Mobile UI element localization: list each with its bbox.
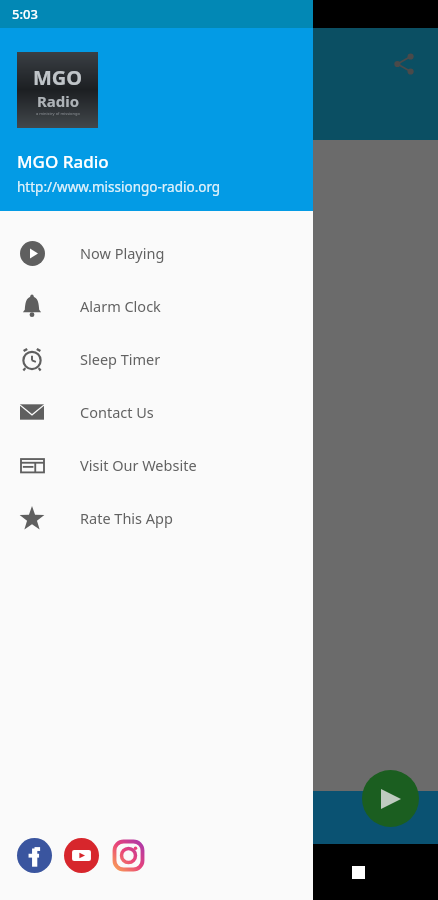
staticText: Sleep Timer xyxy=(80,349,161,369)
button[interactable]: Contact Us xyxy=(0,385,313,438)
button[interactable]: Alarm Clock xyxy=(0,279,313,332)
button[interactable]: YouTube xyxy=(64,838,99,873)
button[interactable]: Recents xyxy=(338,852,378,892)
staticText: Now Playing xyxy=(80,243,165,263)
button[interactable]: Facebook xyxy=(17,838,52,873)
staticText: 5:03 xyxy=(12,5,38,23)
staticText: MGO Radio xyxy=(17,150,109,173)
button[interactable]: Visit Our Website xyxy=(0,438,313,491)
staticText: http://www.missiongo-radio.org xyxy=(17,178,221,196)
button[interactable]: Sleep Timer xyxy=(0,332,313,385)
staticText: Contact Us xyxy=(80,402,154,422)
staticText: Radio xyxy=(37,91,80,111)
staticText: Rate This App xyxy=(80,508,173,528)
button[interactable]: Rate This App xyxy=(0,491,313,544)
staticText: MGO xyxy=(33,64,83,91)
button[interactable]: Share xyxy=(384,44,424,84)
staticText: Alarm Clock xyxy=(80,296,161,316)
button[interactable]: Play xyxy=(362,770,419,827)
staticText: a ministry of missiongo xyxy=(36,111,80,116)
button[interactable]: Now Playing xyxy=(0,226,313,279)
button[interactable]: Back xyxy=(60,852,100,892)
staticText: Visit Our Website xyxy=(80,455,197,475)
button[interactable]: Instagram xyxy=(111,838,146,873)
